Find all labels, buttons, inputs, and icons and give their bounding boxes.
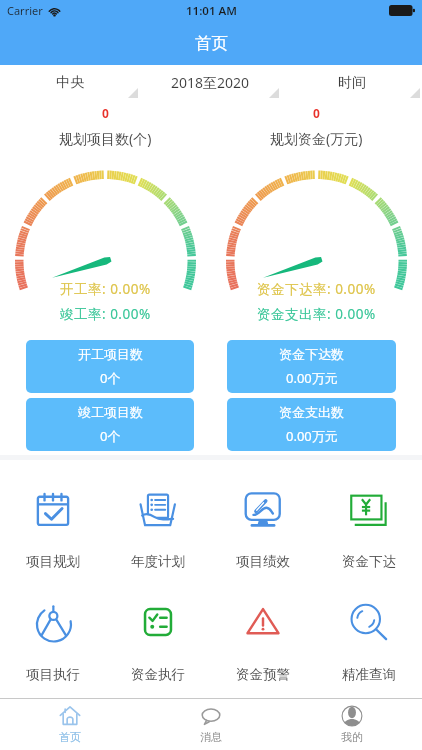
staticText: 首页 <box>59 730 81 744</box>
staticText: 开工率: 0.00% <box>60 280 151 298</box>
button[interactable]: 资金预警 <box>210 604 316 683</box>
staticText: 资金支出率: 0.00% <box>257 305 376 323</box>
button[interactable]: 年度计划 <box>105 491 210 570</box>
staticText: 精准查询 <box>342 666 396 683</box>
staticText: 竣工项目数 <box>78 404 143 420</box>
staticText: 规划资金(万元) <box>270 129 363 148</box>
staticText: 首页 <box>195 33 228 54</box>
staticText: 项目绩效 <box>236 553 290 570</box>
button[interactable]: Home <box>0 699 140 750</box>
button[interactable]: 资金下达数 <box>227 340 396 393</box>
staticText: 中央 <box>56 74 84 92</box>
button[interactable]: 资金支出数 <box>227 398 396 451</box>
button[interactable]: Messages <box>140 699 281 750</box>
staticText: 开工项目数 <box>78 346 143 362</box>
button[interactable]: 项目规划 <box>0 491 105 570</box>
staticText: 消息 <box>200 730 222 744</box>
staticText: 0.00万元 <box>286 427 338 445</box>
staticText: 11:01 AM <box>186 3 237 19</box>
button[interactable]: 时间 <box>281 65 422 100</box>
staticText: 竣工率: 0.00% <box>60 305 151 323</box>
button[interactable]: Profile <box>281 699 422 750</box>
staticText: 0个 <box>100 369 121 387</box>
button[interactable]: 中央 <box>0 65 140 100</box>
button[interactable]: 开工项目数 <box>26 340 194 393</box>
staticText: 资金下达数 <box>279 346 344 362</box>
staticText: 0 <box>102 105 109 121</box>
button[interactable]: 项目绩效 <box>210 491 316 570</box>
staticText: 时间 <box>338 74 366 92</box>
staticText: 资金支出数 <box>279 404 344 420</box>
button[interactable]: 2018至2020 <box>140 65 281 100</box>
staticText: 项目执行 <box>26 666 80 683</box>
staticText: 资金预警 <box>236 666 290 683</box>
button[interactable]: 竣工项目数 <box>26 398 194 451</box>
staticText: 资金下达率: 0.00% <box>257 280 376 298</box>
staticText: 0 <box>313 105 320 121</box>
staticText: 2018至2020 <box>171 73 250 92</box>
staticText: 项目规划 <box>26 553 80 570</box>
staticText: 年度计划 <box>131 553 185 570</box>
staticText: 0个 <box>100 427 121 445</box>
button[interactable]: 资金下达 <box>316 491 422 570</box>
button[interactable]: 资金执行 <box>105 604 210 683</box>
staticText: Carrier <box>7 3 43 18</box>
staticText: 0.00万元 <box>286 369 338 387</box>
staticText: 规划项目数(个) <box>59 129 152 148</box>
staticText: 资金下达 <box>342 553 396 570</box>
staticText: 资金执行 <box>131 666 185 683</box>
button[interactable]: 项目执行 <box>0 604 105 683</box>
button[interactable]: 精准查询 <box>316 604 422 683</box>
staticText: 我的 <box>341 730 363 744</box>
